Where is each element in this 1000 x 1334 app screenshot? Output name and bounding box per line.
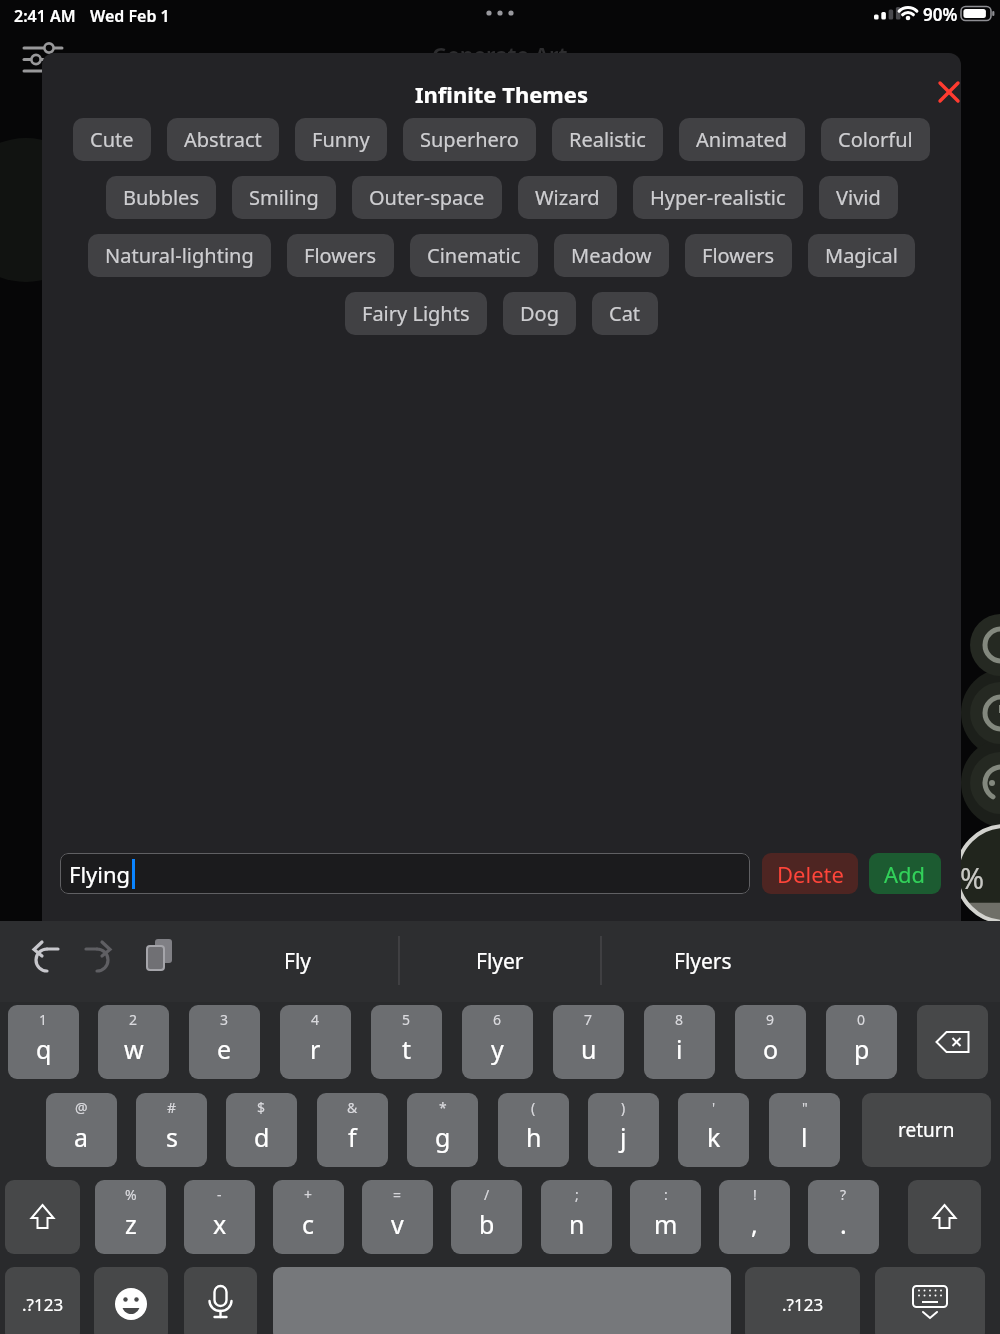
button[interactable]: Fly: [218, 931, 378, 991]
staticText: Abstract: [184, 126, 262, 153]
button[interactable]: Funny: [295, 118, 387, 161]
staticText: 5: [402, 1010, 411, 1029]
staticText: j: [620, 1120, 627, 1154]
button[interactable]: [94, 1267, 168, 1334]
button[interactable]: [917, 1005, 988, 1079]
staticText: .?123: [782, 1293, 824, 1316]
button[interactable]: ": [769, 1093, 840, 1167]
staticText: g: [435, 1120, 451, 1154]
button[interactable]: 9: [735, 1005, 806, 1079]
button[interactable]: Flyer: [420, 931, 580, 991]
button[interactable]: Cat: [592, 292, 658, 335]
staticText: Animated: [696, 126, 788, 153]
button[interactable]: 4: [280, 1005, 351, 1079]
button[interactable]: &: [317, 1093, 388, 1167]
staticText: =: [393, 1185, 402, 1204]
staticText: 90%: [923, 3, 958, 23]
staticText: 4: [311, 1010, 320, 1029]
button[interactable]: :: [630, 1180, 701, 1254]
staticText: %: [125, 1185, 137, 1204]
staticText: r: [310, 1032, 321, 1066]
button[interactable]: *: [407, 1093, 478, 1167]
staticText: d: [254, 1120, 270, 1154]
staticText: x: [213, 1207, 227, 1241]
button[interactable]: [5, 1180, 80, 1254]
button[interactable]: ?: [808, 1180, 879, 1254]
staticText: Infinite Themes: [415, 79, 588, 109]
staticText: Cat: [609, 300, 641, 327]
button[interactable]: (: [498, 1093, 569, 1167]
button[interactable]: Meadow: [554, 234, 669, 277]
button[interactable]: [22, 933, 70, 989]
button[interactable]: Colorful: [821, 118, 930, 161]
button[interactable]: Smiling: [232, 176, 336, 219]
button[interactable]: [134, 933, 182, 989]
button[interactable]: Flying: [60, 853, 750, 894]
button[interactable]: 5: [371, 1005, 442, 1079]
staticText: *: [439, 1098, 447, 1117]
button[interactable]: ': [678, 1093, 749, 1167]
staticText: f: [348, 1120, 357, 1154]
button[interactable]: Flowers: [287, 234, 394, 277]
button[interactable]: Natural-lighting: [88, 234, 271, 277]
staticText: Colorful: [838, 126, 913, 153]
button[interactable]: Add: [869, 853, 941, 894]
button[interactable]: Animated: [679, 118, 805, 161]
button[interactable]: [908, 1180, 981, 1254]
staticText: Flyer: [476, 947, 524, 976]
button[interactable]: +: [273, 1180, 344, 1254]
button[interactable]: ): [588, 1093, 659, 1167]
button[interactable]: #: [136, 1093, 207, 1167]
button[interactable]: Delete: [762, 853, 858, 894]
button[interactable]: Superhero: [403, 118, 536, 161]
button[interactable]: Cinematic: [410, 234, 538, 277]
button[interactable]: 7: [553, 1005, 624, 1079]
button[interactable]: @: [46, 1093, 117, 1167]
button[interactable]: Outer-space: [352, 176, 502, 219]
button[interactable]: 3: [189, 1005, 260, 1079]
button[interactable]: Hyper-realistic: [633, 176, 803, 219]
staticText: y: [491, 1032, 504, 1066]
button[interactable]: 0: [826, 1005, 897, 1079]
staticText: Flying: [69, 859, 131, 889]
button[interactable]: Dog: [503, 292, 576, 335]
button[interactable]: Bubbles: [106, 176, 216, 219]
button[interactable]: Realistic: [552, 118, 663, 161]
button[interactable]: [76, 933, 124, 989]
button[interactable]: Flowers: [685, 234, 792, 277]
button[interactable]: -: [184, 1180, 255, 1254]
button[interactable]: %: [95, 1180, 166, 1254]
staticText: t: [402, 1032, 412, 1066]
staticText: -: [217, 1185, 222, 1204]
staticText: k: [707, 1120, 721, 1154]
button[interactable]: ;: [541, 1180, 612, 1254]
staticText: Bubbles: [123, 184, 199, 211]
button[interactable]: $: [226, 1093, 297, 1167]
button[interactable]: Magical: [808, 234, 915, 277]
button[interactable]: return: [862, 1093, 991, 1167]
button[interactable]: .?123: [745, 1267, 860, 1334]
staticText: !: [753, 1185, 757, 1204]
button[interactable]: Cute: [73, 118, 151, 161]
button[interactable]: [184, 1267, 257, 1334]
staticText: ,: [751, 1207, 758, 1241]
button[interactable]: 8: [644, 1005, 715, 1079]
button[interactable]: 6: [462, 1005, 533, 1079]
button[interactable]: [875, 1267, 985, 1334]
button[interactable]: Flyers: [623, 931, 783, 991]
button[interactable]: 2: [98, 1005, 169, 1079]
staticText: 2: [129, 1010, 138, 1029]
button[interactable]: !: [719, 1180, 790, 1254]
button[interactable]: Abstract: [167, 118, 279, 161]
button[interactable]: [935, 78, 961, 106]
button[interactable]: =: [362, 1180, 433, 1254]
staticText: /: [484, 1185, 490, 1204]
button[interactable]: Fairy Lights: [345, 292, 487, 335]
staticText: ;: [575, 1185, 579, 1204]
button[interactable]: Vivid: [819, 176, 898, 219]
button[interactable]: Wizard: [518, 176, 617, 219]
button[interactable]: 1: [8, 1005, 79, 1079]
button[interactable]: /: [451, 1180, 522, 1254]
button[interactable]: .?123: [5, 1267, 80, 1334]
